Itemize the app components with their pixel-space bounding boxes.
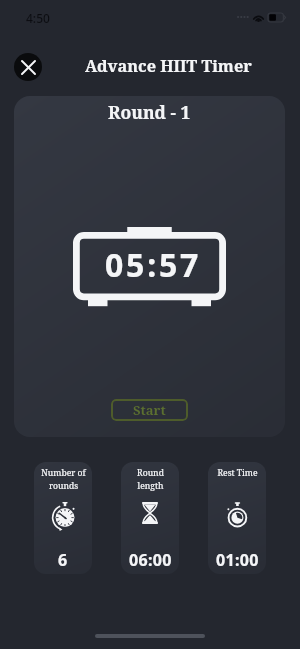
staticText: 6 [58, 549, 68, 571]
staticText: 01:00 [216, 549, 259, 571]
button[interactable]: Close [14, 53, 42, 81]
staticText: Rest Time [217, 467, 258, 479]
staticText: 4:50 [26, 10, 50, 26]
staticText: 06:00 [129, 549, 172, 571]
staticText: 05:57 [105, 243, 202, 287]
staticText: Number of rounds [41, 467, 86, 491]
button[interactable]: Rest Time [208, 462, 266, 574]
staticText: Round length [137, 467, 164, 491]
staticText: Start [133, 401, 166, 419]
staticText: Round - 1 [108, 100, 191, 124]
button[interactable]: Start [111, 399, 188, 421]
staticText: Advance HIIT Timer [85, 55, 252, 77]
button[interactable]: Round length [121, 462, 179, 574]
button[interactable]: Number of rounds [34, 462, 92, 574]
